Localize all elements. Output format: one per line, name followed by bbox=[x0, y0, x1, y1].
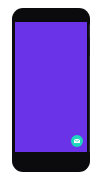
button[interactable]: Compose message bbox=[71, 135, 83, 147]
